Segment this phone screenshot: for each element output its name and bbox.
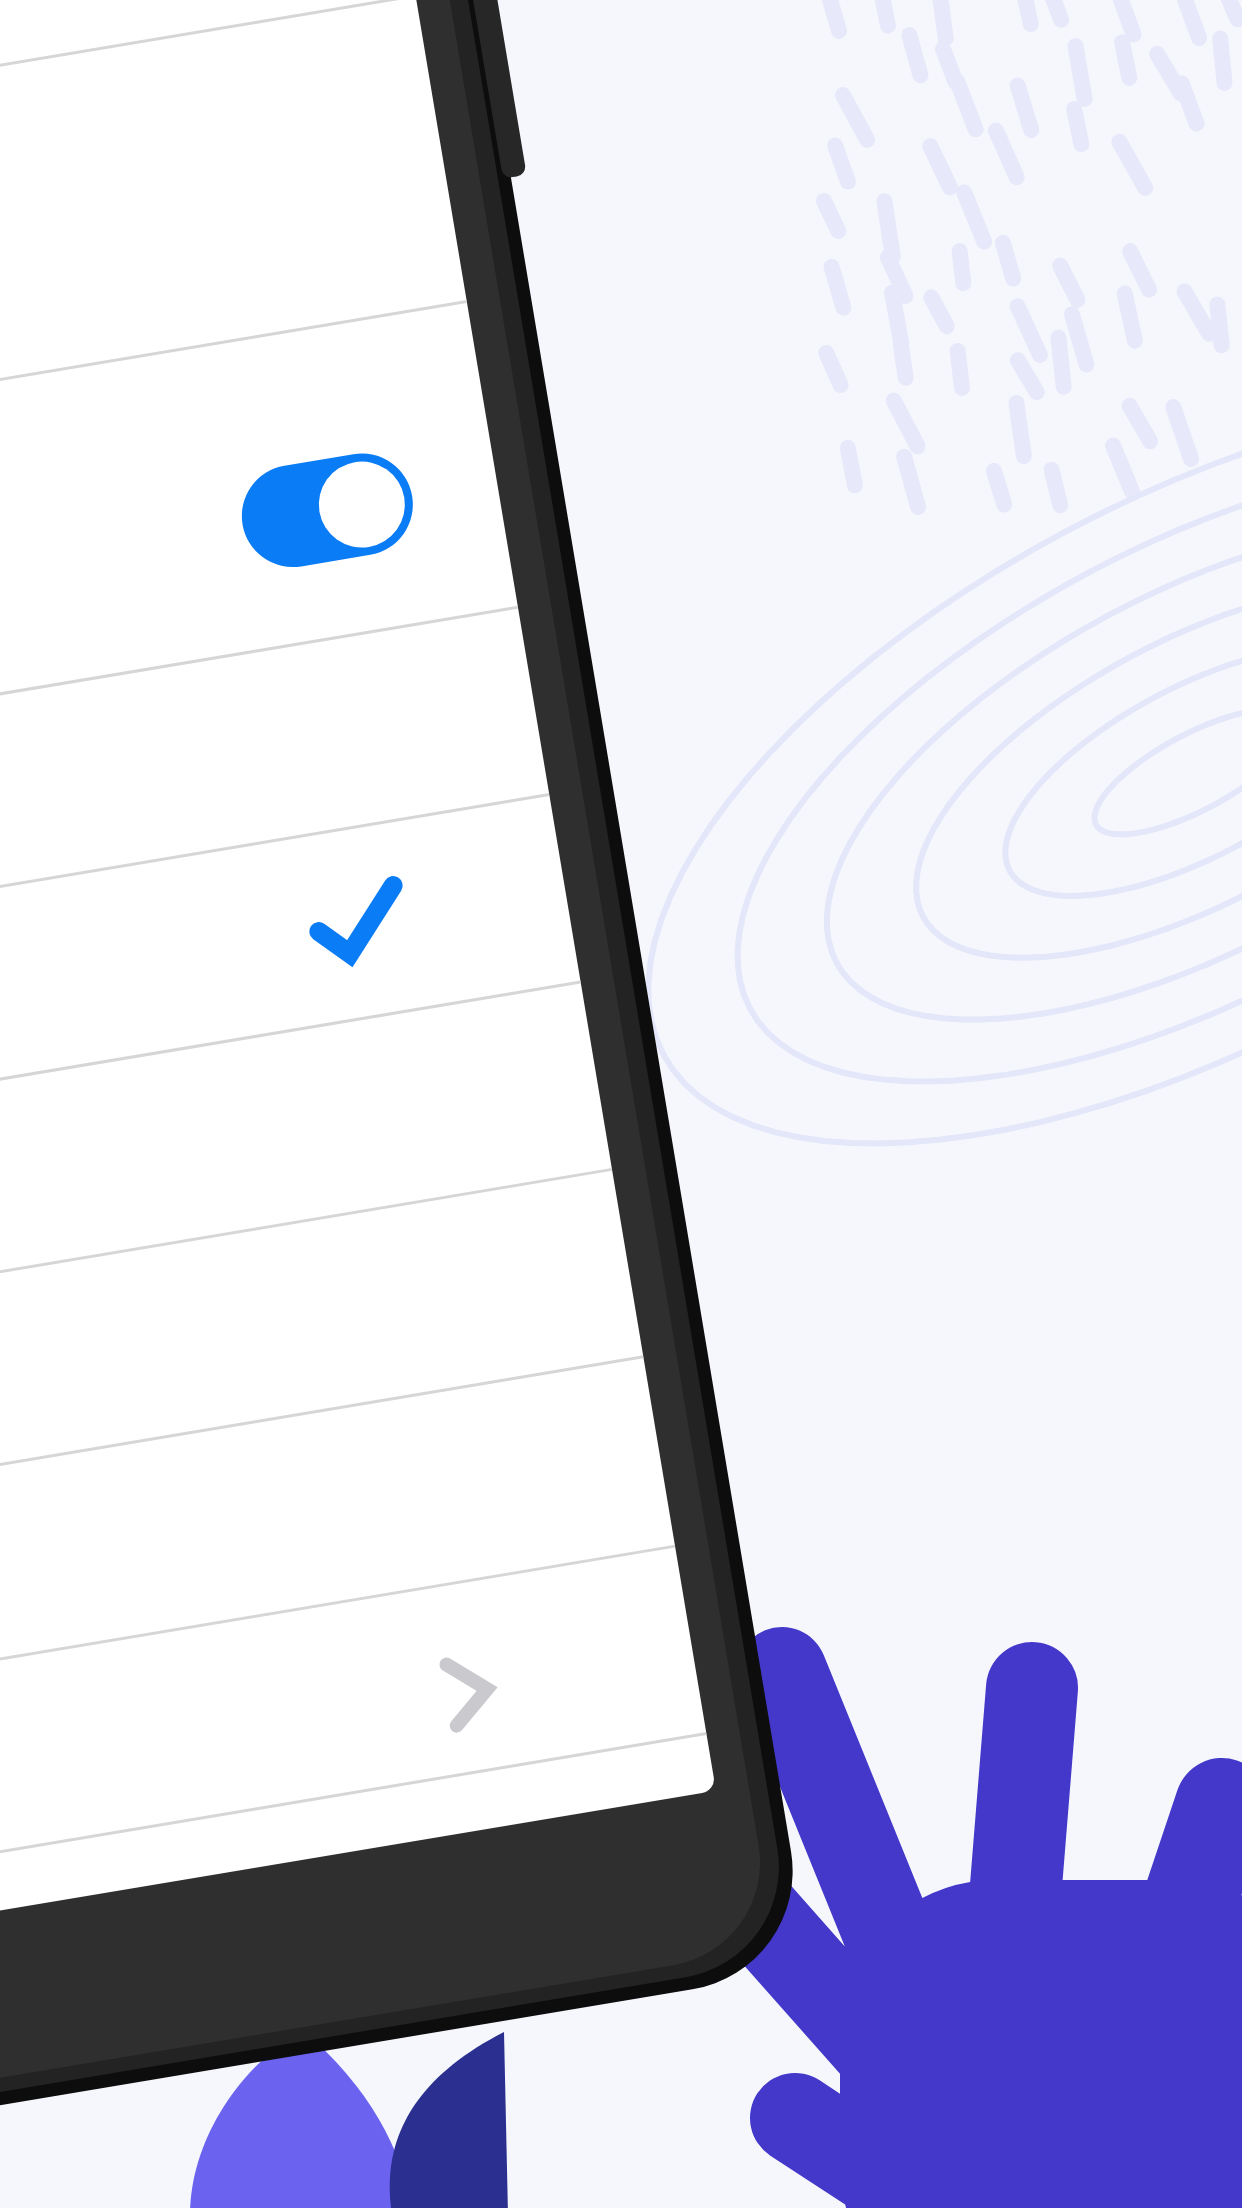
button[interactable]: Settings screen device preview [0, 0, 1242, 2208]
